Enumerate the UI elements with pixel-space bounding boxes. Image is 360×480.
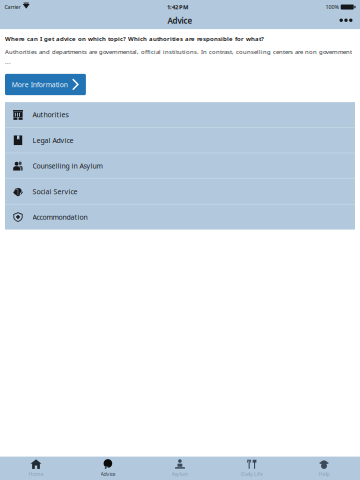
staticText: Asylum: [171, 470, 188, 477]
button[interactable]: Daily Life: [216, 455, 288, 480]
staticText: Home: [28, 470, 43, 477]
staticText: Carrier: [4, 3, 20, 11]
button[interactable]: Advice: [72, 455, 144, 480]
staticText: Daily Life: [241, 470, 263, 477]
staticText: Authorities: [32, 110, 68, 119]
button[interactable]: More options: [329, 16, 360, 27]
button[interactable]: Help: [288, 455, 360, 480]
staticText: Accommondation: [32, 212, 87, 222]
button[interactable]: Asylum: [144, 455, 216, 480]
button[interactable]: Counselling in Asylum: [5, 153, 355, 178]
staticText: 1:42 PM: [167, 3, 188, 11]
staticText: Authorities and departments are governme…: [5, 48, 352, 56]
button[interactable]: Accommondation: [5, 205, 355, 230]
button[interactable]: More Information: [5, 74, 86, 95]
staticText: Advice: [167, 15, 192, 26]
staticText: Social Service: [32, 187, 77, 196]
button[interactable]: Home: [0, 455, 72, 480]
staticText: Counselling in Asylum: [32, 161, 102, 170]
staticText: ...: [5, 58, 11, 65]
button[interactable]: Legal Advice: [5, 128, 355, 153]
button[interactable]: Authorities: [5, 102, 355, 127]
staticText: Legal Advice: [32, 136, 73, 145]
staticText: More Information: [12, 80, 68, 89]
button[interactable]: Social Service: [5, 179, 355, 204]
staticText: 100%: [325, 3, 338, 11]
staticText: Advice: [100, 470, 115, 477]
staticText: Where can I get advice on which topic? W…: [5, 35, 264, 43]
staticText: Help: [318, 470, 329, 477]
